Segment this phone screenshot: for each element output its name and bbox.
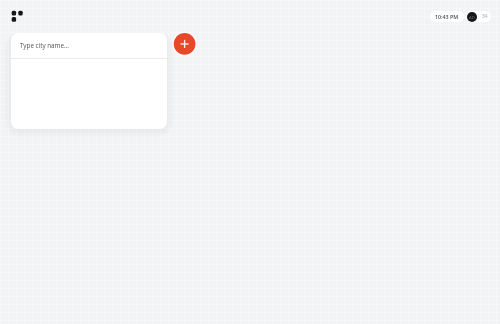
staticText: AD xyxy=(469,15,475,21)
button[interactable]: App menu xyxy=(10,9,24,22)
button[interactable]: Type city name... xyxy=(11,33,167,58)
staticText: Type city name... xyxy=(20,41,69,50)
button[interactable]: 10:43 PM xyxy=(430,11,464,22)
staticText: 34 xyxy=(482,13,488,20)
staticText: 10:43 PM xyxy=(435,13,459,20)
button[interactable]: Account xyxy=(466,11,491,22)
button[interactable]: Add city xyxy=(173,33,197,57)
